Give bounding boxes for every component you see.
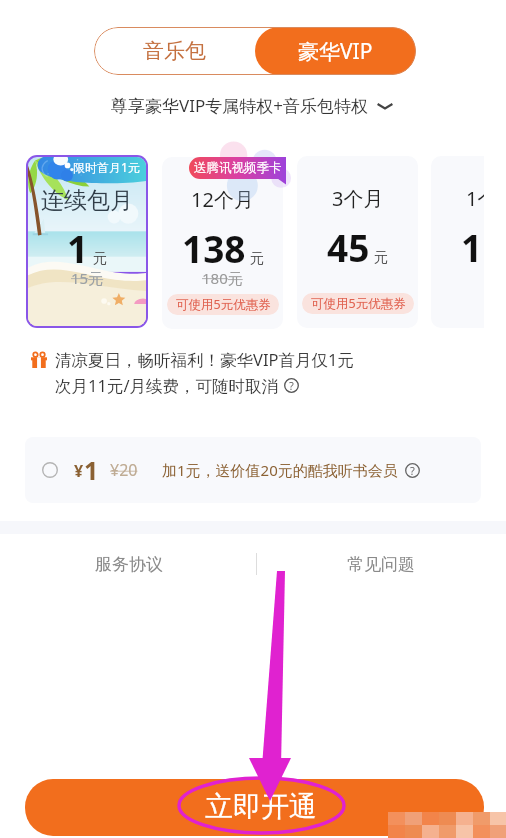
- staticText: 送腾讯视频季卡: [194, 160, 282, 176]
- staticText: 元: [93, 250, 107, 268]
- button[interactable]: 音乐包: [94, 27, 255, 75]
- staticText: 常见问题: [347, 554, 415, 575]
- staticText: 连续包月: [41, 186, 133, 215]
- button[interactable]: 立即开通: [25, 779, 484, 836]
- staticText: 可使用5元优惠券: [311, 295, 406, 312]
- staticText: 12个月: [191, 186, 254, 213]
- staticText: 180元: [202, 268, 243, 288]
- staticText: 1: [67, 223, 89, 273]
- staticText: 1: [84, 453, 99, 487]
- staticText: 3个月: [332, 185, 384, 212]
- staticText: 1个月: [466, 185, 484, 212]
- staticText: 45: [327, 222, 370, 272]
- button[interactable]: 尊享豪华VIP专属特权+音乐包特权: [0, 94, 506, 117]
- button[interactable]: 3个月: [297, 156, 418, 328]
- staticText: ?: [289, 378, 294, 393]
- staticText: 15元: [71, 268, 104, 288]
- staticText: 加1元，送价值20元的酷我听书会员: [162, 460, 398, 480]
- staticText: 豪华VIP: [298, 37, 373, 66]
- staticText: 138: [182, 223, 246, 273]
- staticText: 限时首月1元: [73, 159, 140, 175]
- staticText: 立即开通: [205, 789, 317, 824]
- button[interactable]: ¥: [25, 437, 481, 503]
- staticText: 尊享豪华VIP专属特权+音乐包特权: [111, 94, 368, 117]
- button[interactable]: 豪华VIP: [255, 27, 416, 75]
- button[interactable]: 限时首月1元: [28, 157, 146, 326]
- button[interactable]: 12个月: [162, 157, 283, 329]
- staticText: ?: [410, 463, 415, 478]
- staticText: 元: [374, 249, 388, 267]
- button[interactable]: 服务协议: [94, 552, 164, 576]
- staticText: 元: [250, 250, 264, 268]
- button[interactable]: 1个月: [431, 156, 484, 328]
- staticText: 可使用5元优惠券: [176, 296, 271, 313]
- staticText: 15: [461, 222, 484, 272]
- staticText: 清凉夏日，畅听福利！豪华VIP首月仅1元: [55, 348, 354, 371]
- button[interactable]: 常见问题: [346, 552, 416, 576]
- staticText: 服务协议: [95, 554, 163, 575]
- staticText: ¥: [74, 460, 84, 482]
- staticText: ¥20: [110, 459, 138, 481]
- staticText: 音乐包: [143, 38, 206, 64]
- staticText: 次月11元/月续费，可随时取消: [55, 374, 279, 397]
